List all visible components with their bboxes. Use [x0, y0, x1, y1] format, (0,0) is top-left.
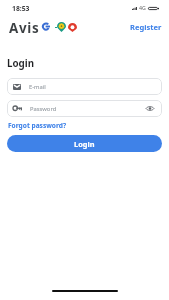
staticText: Login: [7, 57, 35, 70]
staticText: 4G: [139, 4, 146, 11]
staticText: Login: [74, 139, 95, 149]
button[interactable]: Register: [130, 22, 169, 32]
staticText: Avis: [9, 19, 40, 37]
button[interactable]: E-mail: [7, 78, 162, 95]
button[interactable]: Password: [7, 100, 162, 117]
button[interactable]: Login: [7, 135, 162, 152]
other: Show password: [146, 106, 154, 111]
button[interactable]: Forgot password?: [0, 121, 67, 130]
staticText: E-mail: [29, 83, 46, 91]
staticText: Password: [30, 105, 57, 113]
staticText: 18:53: [12, 4, 30, 13]
